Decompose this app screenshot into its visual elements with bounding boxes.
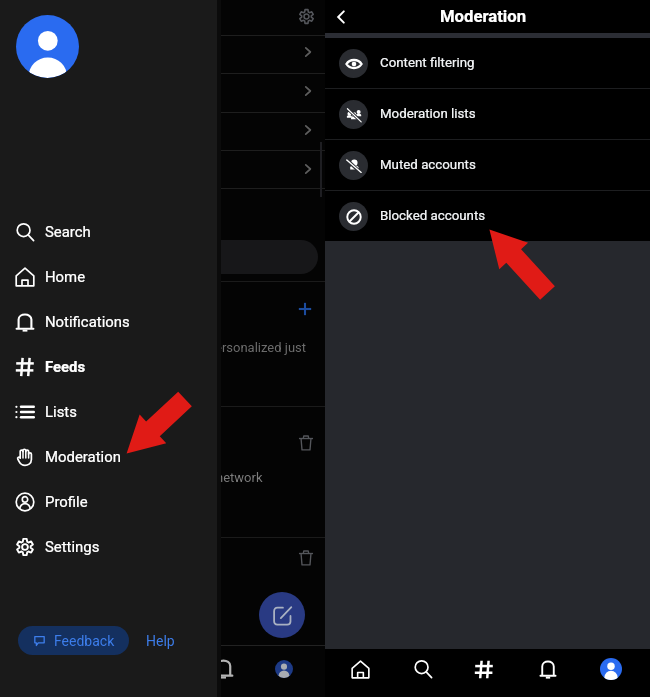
button[interactable]: Search [0, 209, 217, 254]
staticText: Moderation [440, 7, 527, 27]
staticText: Muted accounts [380, 157, 476, 173]
button[interactable]: Profile [0, 479, 217, 524]
staticText: network [216, 470, 263, 485]
button[interactable]: Content filtering [325, 38, 650, 88]
button[interactable]: Notifications [524, 649, 572, 697]
staticText: Notifications [45, 313, 130, 330]
staticText: Moderation [45, 448, 121, 465]
button[interactable]: Home [0, 254, 217, 299]
staticText: Feedback [54, 633, 115, 649]
button[interactable]: Search [399, 649, 447, 697]
button[interactable]: Notifications [0, 299, 217, 344]
button[interactable]: Settings [0, 524, 217, 569]
button[interactable]: Blocked accounts [325, 191, 650, 241]
button[interactable]: Feeds [460, 649, 508, 697]
button[interactable]: New post [259, 592, 305, 638]
button[interactable]: Muted accounts [325, 140, 650, 190]
button[interactable]: Profile [587, 649, 635, 697]
button[interactable]: Feedback [18, 626, 129, 655]
button[interactable]: Back [328, 4, 354, 30]
staticText: Content filtering [380, 55, 475, 71]
staticText: Search [45, 223, 91, 240]
staticText: Moderation lists [380, 106, 476, 122]
staticText: Blocked accounts [380, 208, 486, 224]
button[interactable]: Moderation [0, 434, 217, 479]
staticText: Home [45, 268, 86, 285]
staticText: ersonalized just [215, 340, 307, 355]
button[interactable]: Moderation lists [325, 89, 650, 139]
staticText: Help [146, 633, 175, 649]
staticText: Feeds [45, 358, 86, 375]
button[interactable]: Help [135, 626, 186, 655]
staticText: Profile [45, 493, 88, 510]
button[interactable]: Profile avatar [16, 15, 79, 78]
button[interactable]: Feeds [0, 344, 217, 389]
button[interactable]: Lists [0, 389, 217, 434]
staticText: Settings [45, 538, 100, 555]
staticText: Lists [45, 403, 77, 420]
button[interactable]: Home [336, 649, 384, 697]
